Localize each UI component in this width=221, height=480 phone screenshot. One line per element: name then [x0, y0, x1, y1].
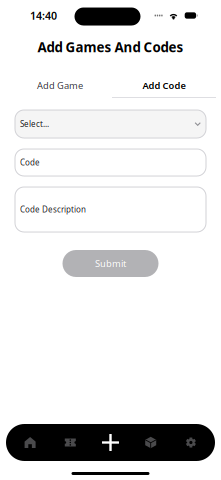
button[interactable]: Code Description: [15, 187, 206, 232]
staticText: Code: [20, 157, 40, 168]
button[interactable]: Submit: [62, 250, 158, 277]
button[interactable]: Add Game: [8, 80, 112, 98]
staticText: Code Description: [20, 204, 86, 215]
button[interactable]: Code: [15, 149, 206, 176]
button[interactable]: Home: [10, 437, 50, 448]
button[interactable]: Games: [50, 437, 90, 448]
staticText: Select...: [20, 119, 49, 129]
staticText: Add Games And Codes: [37, 38, 183, 56]
staticText: Add Code: [142, 79, 185, 92]
button[interactable]: Collection: [131, 437, 171, 448]
staticText: 14:40: [30, 8, 57, 23]
staticText: Add Game: [37, 79, 83, 92]
staticText: Submit: [95, 257, 126, 270]
button[interactable]: Add: [90, 433, 131, 452]
button[interactable]: Select...: [15, 110, 206, 138]
button[interactable]: Settings: [171, 437, 211, 447]
button[interactable]: Add Code: [112, 80, 216, 98]
